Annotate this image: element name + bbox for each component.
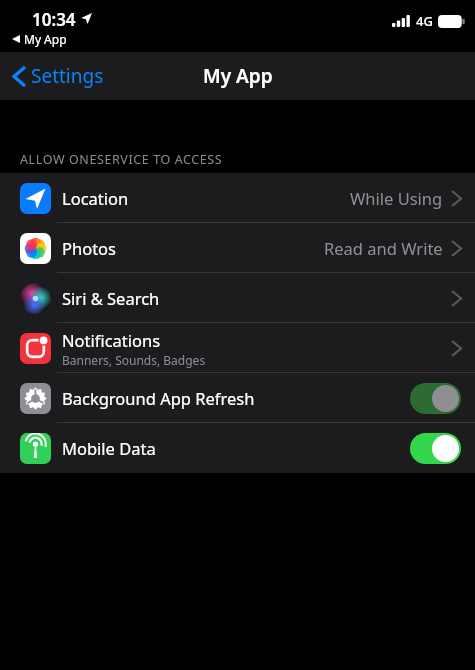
staticText: Read and Write (324, 237, 443, 259)
button[interactable]: Settings (10, 57, 108, 95)
button[interactable]: My App (12, 31, 67, 47)
staticText: My App (24, 31, 67, 47)
staticText: Mobile Data (62, 437, 156, 459)
staticText: Photos (62, 237, 117, 259)
staticText: ALLOW ONESERVICE TO ACCESS (20, 151, 223, 168)
button[interactable]: Siri & Search (0, 273, 475, 323)
staticText: 4G (416, 12, 433, 30)
staticText: Location (62, 187, 129, 209)
button[interactable]: Toggle (410, 433, 461, 464)
button[interactable]: Photos (0, 223, 475, 273)
staticText: Settings (31, 63, 104, 89)
staticText: Siri & Search (62, 287, 160, 309)
staticText: My App (203, 63, 273, 89)
staticText: Banners, Sounds, Badges (62, 352, 206, 368)
button[interactable]: Background App Refresh (0, 373, 475, 423)
button[interactable]: Mobile Data (0, 423, 475, 473)
button[interactable]: Notifications (0, 323, 475, 373)
button[interactable]: Toggle (410, 383, 461, 414)
staticText: Notifications (62, 329, 161, 351)
staticText: While Using (350, 187, 443, 209)
staticText: 10:34 (32, 8, 76, 31)
staticText: Background App Refresh (62, 387, 255, 409)
button[interactable]: Location (0, 173, 475, 223)
